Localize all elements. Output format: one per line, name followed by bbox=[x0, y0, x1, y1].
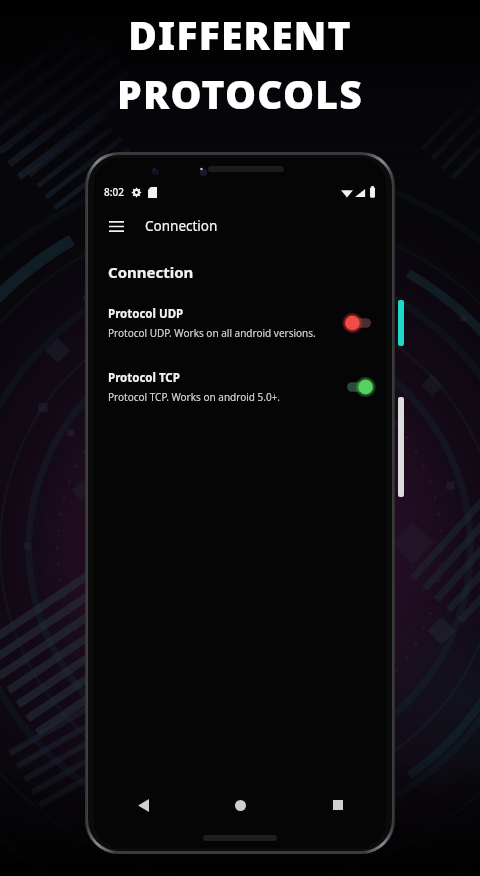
button[interactable]: Back bbox=[94, 782, 192, 828]
button[interactable]: Protocol UDP bbox=[94, 306, 386, 340]
button[interactable]: Recent apps bbox=[289, 782, 386, 828]
staticText: Protocol UDP. Works on all android versi… bbox=[108, 326, 316, 340]
button[interactable]: Home bbox=[192, 782, 289, 828]
button[interactable]: Open navigation menu bbox=[99, 209, 133, 243]
staticText: PROTOCOLS bbox=[117, 67, 363, 120]
staticText: Protocol TCP bbox=[108, 370, 180, 386]
staticText: DIFFERENT bbox=[128, 8, 352, 61]
staticText: Protocol UDP bbox=[108, 306, 184, 322]
button[interactable]: Protocol TCP bbox=[94, 370, 386, 404]
staticText: Protocol TCP. Works on android 5.0+. bbox=[108, 390, 281, 404]
staticText: Connection bbox=[108, 262, 194, 282]
staticText: 8:02 bbox=[104, 185, 124, 199]
button[interactable]: Toggle on bbox=[344, 378, 374, 396]
staticText: Connection bbox=[145, 217, 218, 235]
button[interactable]: Toggle off bbox=[344, 314, 374, 332]
